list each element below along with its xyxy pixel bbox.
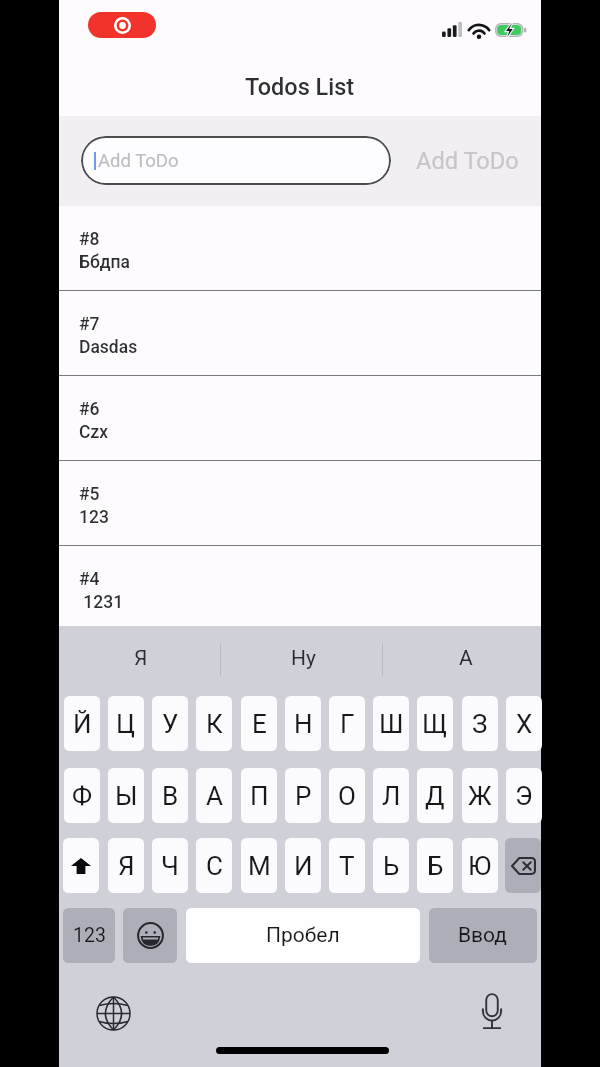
button[interactable]: О	[329, 768, 365, 823]
button[interactable]: #7	[59, 291, 541, 376]
button[interactable]: Ну	[222, 626, 384, 690]
staticText: Ф	[72, 781, 93, 811]
button[interactable]: Я	[59, 626, 222, 690]
staticText: Б	[427, 851, 444, 881]
button[interactable]: #6	[59, 376, 541, 461]
button[interactable]: С	[196, 838, 232, 893]
button[interactable]: М	[241, 838, 277, 893]
button[interactable]: #8	[59, 206, 541, 291]
staticText: З	[472, 709, 488, 739]
staticText: Dasdas	[79, 337, 138, 358]
staticText: М	[248, 851, 271, 881]
staticText: Э	[515, 781, 533, 811]
button[interactable]: Г	[329, 696, 365, 751]
staticText: Я	[118, 851, 135, 881]
button[interactable]: Backspace	[505, 838, 541, 893]
staticText: Р	[295, 781, 312, 811]
staticText: И	[294, 851, 313, 881]
staticText: С	[206, 851, 223, 881]
staticText: Todos List	[245, 73, 355, 101]
staticText: Add ToDo	[416, 147, 519, 175]
button[interactable]: Ц	[108, 696, 144, 751]
button[interactable]: А	[384, 626, 547, 690]
staticText: Х	[516, 709, 533, 739]
staticText: #6	[79, 399, 100, 420]
staticText: 123	[73, 924, 106, 947]
button[interactable]: Add ToDo	[411, 136, 524, 185]
button[interactable]: Ж	[462, 768, 498, 823]
staticText: Ббдпа	[79, 252, 130, 273]
button[interactable]: Т	[329, 838, 365, 893]
button[interactable]: Д	[417, 768, 453, 823]
button[interactable]: Ы	[108, 768, 144, 823]
staticText: Ж	[468, 781, 492, 811]
staticText: К	[206, 709, 223, 739]
button[interactable]: Пробел	[186, 908, 420, 963]
button[interactable]: Б	[417, 838, 453, 893]
staticText: #5	[79, 484, 100, 505]
staticText: Ы	[115, 781, 138, 811]
button[interactable]: Х	[506, 696, 542, 751]
button[interactable]: И	[285, 838, 321, 893]
staticText: Я	[134, 646, 148, 671]
button[interactable]: Э	[506, 768, 542, 823]
button[interactable]: П	[241, 768, 277, 823]
button[interactable]: В	[152, 768, 188, 823]
button[interactable]: Л	[373, 768, 409, 823]
button[interactable]: Screen recording	[88, 12, 156, 38]
button[interactable]: Switch keyboard language	[94, 994, 132, 1032]
button[interactable]: Й	[64, 696, 100, 751]
button[interactable]: Ч	[152, 838, 188, 893]
staticText: Г	[340, 709, 355, 739]
staticText: Л	[382, 781, 401, 811]
staticText: Т	[339, 851, 355, 881]
button[interactable]: Я	[108, 838, 144, 893]
staticText: #8	[79, 229, 100, 250]
button[interactable]: Emoji	[123, 908, 177, 963]
staticText: Add ToDo	[98, 150, 179, 172]
staticText: Ч	[161, 851, 179, 881]
button[interactable]: А	[196, 768, 232, 823]
button[interactable]: Dictation	[474, 988, 509, 1034]
staticText: В	[162, 781, 179, 811]
staticText: Ц	[116, 709, 136, 739]
button[interactable]: Е	[241, 696, 277, 751]
button[interactable]: #4	[59, 546, 541, 631]
staticText: #7	[79, 314, 100, 335]
button[interactable]: 123	[63, 908, 115, 963]
staticText: Ь	[383, 851, 400, 881]
button[interactable]: #5	[59, 461, 541, 546]
staticText: О	[338, 781, 356, 811]
staticText: Ну	[291, 646, 316, 671]
button[interactable]: У	[152, 696, 188, 751]
button[interactable]: Ю	[462, 838, 498, 893]
button[interactable]: Щ	[417, 696, 453, 751]
button[interactable]: Ввод	[429, 908, 537, 963]
staticText: #4	[79, 569, 100, 590]
button[interactable]: Ф	[64, 768, 100, 823]
staticText: А	[459, 646, 473, 671]
staticText: Й	[73, 709, 92, 739]
staticText: Е	[252, 709, 267, 739]
button[interactable]: К	[196, 696, 232, 751]
staticText: Ш	[379, 709, 404, 739]
staticText: А	[206, 781, 223, 811]
staticText: Czx	[79, 422, 109, 443]
button[interactable]: З	[462, 696, 498, 751]
staticText: Н	[294, 709, 313, 739]
button[interactable]: Р	[285, 768, 321, 823]
button[interactable]: Ш	[373, 696, 409, 751]
staticText: Пробел	[266, 923, 340, 948]
staticText: У	[162, 709, 179, 739]
button[interactable]: Н	[285, 696, 321, 751]
button[interactable]: Add ToDo	[81, 136, 391, 185]
staticText: Ю	[468, 851, 492, 881]
staticText: 1231	[79, 592, 124, 613]
staticText: П	[250, 781, 269, 811]
staticText: Д	[425, 781, 445, 811]
staticText: Ввод	[458, 923, 508, 948]
button[interactable]: Ь	[373, 838, 409, 893]
staticText: 123	[79, 507, 109, 528]
staticText: Щ	[422, 709, 448, 739]
button[interactable]: Shift	[63, 838, 99, 893]
